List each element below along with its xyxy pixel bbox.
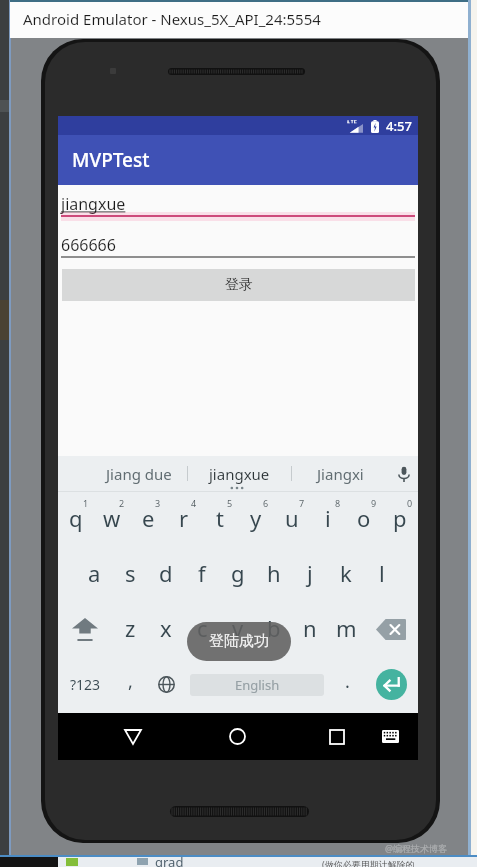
button[interactable]: Jiang due xyxy=(90,456,187,491)
staticText: p xyxy=(393,503,407,533)
button[interactable]: c xyxy=(184,602,220,657)
staticText: k xyxy=(340,558,352,588)
button[interactable]: Shift xyxy=(58,602,112,657)
button[interactable]: 0 xyxy=(382,492,418,547)
staticText: 7 xyxy=(299,497,305,509)
button[interactable]: Back xyxy=(103,713,163,760)
staticText: b xyxy=(267,613,281,643)
button[interactable]: f xyxy=(184,547,220,602)
staticText: 1 xyxy=(83,497,89,509)
staticText: g xyxy=(231,558,245,588)
button[interactable]: 5 xyxy=(202,492,238,547)
staticText: , xyxy=(128,669,133,694)
button[interactable]: b xyxy=(256,602,292,657)
button[interactable]: English xyxy=(190,674,324,696)
button[interactable]: Jiangxi xyxy=(291,456,389,491)
staticText: t xyxy=(216,503,224,533)
staticText: Android Emulator - Nexus_5X_API_24:5554 xyxy=(23,9,321,29)
staticText: 666666 xyxy=(61,234,116,256)
button[interactable]: d xyxy=(148,547,184,602)
button[interactable]: Home xyxy=(207,713,267,760)
staticText: jiangxue xyxy=(209,464,270,484)
staticText: 3 xyxy=(155,497,161,509)
staticText: 6 xyxy=(263,497,269,509)
button[interactable]: 6 xyxy=(238,492,274,547)
staticText: f xyxy=(198,558,206,588)
button[interactable]: ?123 xyxy=(58,657,112,712)
staticText: c xyxy=(197,613,208,643)
staticText: 登录 xyxy=(225,276,253,294)
button[interactable]: jiangxue xyxy=(187,456,291,491)
staticText: z xyxy=(125,613,136,643)
staticText: i xyxy=(325,503,331,533)
staticText: o xyxy=(357,503,371,533)
button[interactable]: a xyxy=(76,547,112,602)
staticText: m xyxy=(336,613,357,643)
staticText: s xyxy=(125,558,136,588)
button[interactable]: k xyxy=(328,547,364,602)
button[interactable]: 3 xyxy=(130,492,166,547)
staticText: Jiangxi xyxy=(317,464,364,484)
button[interactable]: s xyxy=(112,547,148,602)
button[interactable]: Change language xyxy=(148,657,184,712)
staticText: h xyxy=(267,558,281,588)
staticText: 5 xyxy=(227,497,233,509)
button[interactable]: v xyxy=(220,602,256,657)
staticText: 4:57 xyxy=(386,117,412,135)
button[interactable]: 4 xyxy=(166,492,202,547)
staticText: 8 xyxy=(335,497,341,509)
button[interactable]: h xyxy=(256,547,292,602)
button[interactable]: z xyxy=(112,602,148,657)
button[interactable]: 7 xyxy=(274,492,310,547)
button[interactable]: x xyxy=(148,602,184,657)
staticText: e xyxy=(142,503,155,533)
button[interactable]: 8 xyxy=(310,492,346,547)
staticText: 9 xyxy=(371,497,377,509)
button[interactable]: g xyxy=(220,547,256,602)
staticText: @编程技术博客 xyxy=(385,842,448,854)
staticText: n xyxy=(303,613,317,643)
button[interactable]: Voice input xyxy=(389,456,418,491)
button[interactable]: . xyxy=(330,657,364,712)
staticText: 4 xyxy=(191,497,197,509)
button[interactable]: 9 xyxy=(346,492,382,547)
button[interactable]: n xyxy=(292,602,328,657)
staticText: j xyxy=(307,558,313,588)
staticText: 登陆成功 xyxy=(209,632,269,651)
staticText: (做你必要用期计解除的 xyxy=(322,858,415,867)
button[interactable]: 2 xyxy=(94,492,130,547)
staticText: r xyxy=(179,503,189,533)
staticText: a xyxy=(88,558,101,588)
staticText: w xyxy=(103,503,121,533)
button[interactable]: , xyxy=(112,657,148,712)
button[interactable]: Backspace xyxy=(364,602,418,657)
staticText: x xyxy=(160,613,172,643)
button[interactable]: j xyxy=(292,547,328,602)
button[interactable]: 1 xyxy=(58,492,94,547)
staticText: u xyxy=(285,503,299,533)
staticText: English xyxy=(235,676,280,694)
staticText: grad xyxy=(155,853,184,867)
staticText: . xyxy=(345,669,350,694)
staticText: 0 xyxy=(407,497,413,509)
staticText: 2 xyxy=(119,497,125,509)
staticText: jiangxue xyxy=(61,193,126,215)
button[interactable]: m xyxy=(328,602,364,657)
staticText: d xyxy=(159,558,173,588)
staticText: v xyxy=(232,613,244,643)
button[interactable]: Recents xyxy=(307,713,367,760)
staticText: y xyxy=(250,503,262,533)
staticText: Jiang due xyxy=(106,464,172,484)
staticText: l xyxy=(379,558,385,588)
staticText: MVPTest xyxy=(72,147,150,173)
button[interactable]: 登录 xyxy=(62,269,415,301)
button[interactable]: l xyxy=(364,547,400,602)
button[interactable]: Switch keyboard xyxy=(365,713,415,760)
staticText: ?123 xyxy=(70,675,101,694)
staticText: q xyxy=(69,503,83,533)
button[interactable]: Enter xyxy=(364,657,418,712)
